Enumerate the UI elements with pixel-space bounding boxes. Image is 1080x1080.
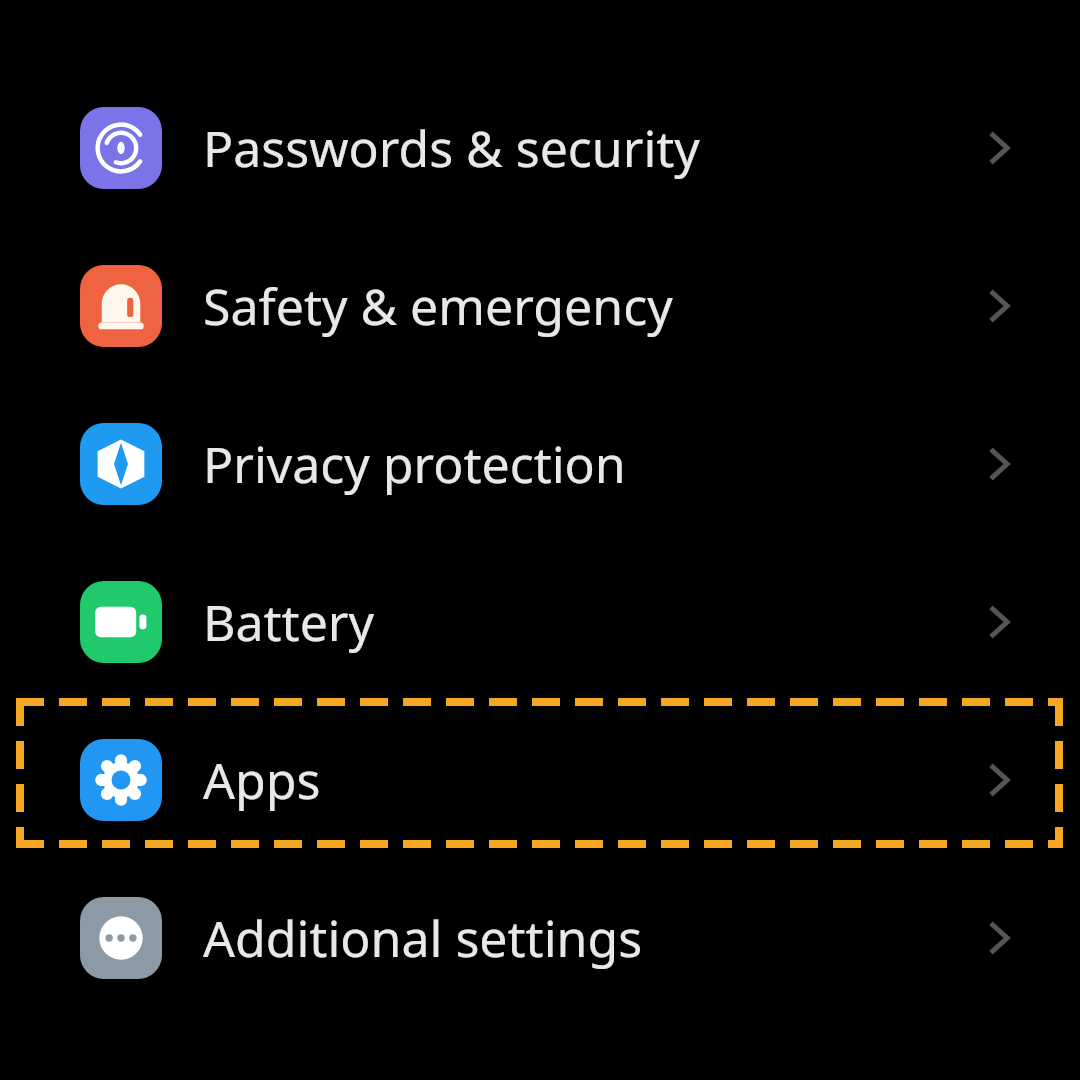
button[interactable]: Additional settings [0,859,1080,1017]
staticText: Passwords & security [203,114,700,182]
staticText: Apps [203,746,321,814]
button[interactable]: Battery [0,543,1080,701]
button[interactable]: Passwords & security [0,69,1080,227]
staticText: Privacy protection [203,430,626,498]
staticText: Safety & emergency [203,272,673,340]
staticText: Additional settings [203,904,643,972]
staticText: Battery [203,588,374,656]
button[interactable]: Privacy protection [0,385,1080,543]
button[interactable]: Apps [0,701,1080,859]
button[interactable]: Safety & emergency [0,227,1080,385]
